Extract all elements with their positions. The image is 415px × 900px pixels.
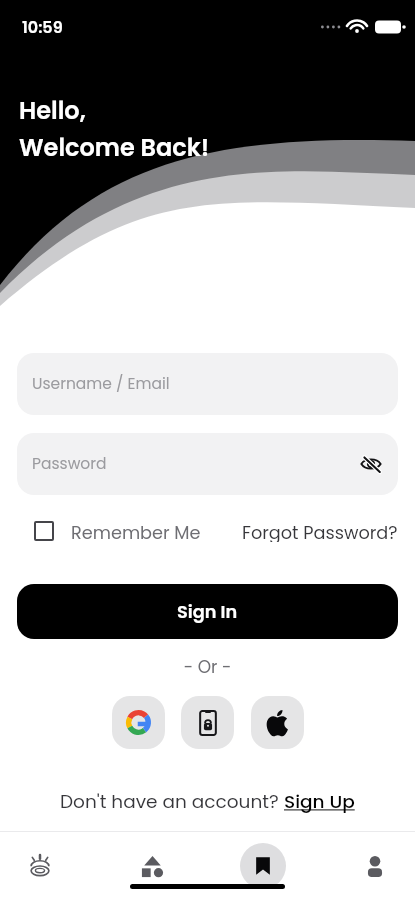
button[interactable]: Sign in with Apple — [251, 696, 304, 749]
button[interactable]: Sign In — [17, 584, 398, 639]
button[interactable]: Saved — [240, 843, 286, 889]
button[interactable]: Categories — [129, 843, 175, 889]
button[interactable]: Password — [17, 433, 398, 495]
button[interactable]: Show password — [354, 447, 388, 481]
button[interactable]: Sign Up — [284, 789, 355, 815]
button[interactable]: Sign in with Google — [112, 696, 165, 749]
button[interactable]: Sign in with phone — [181, 696, 234, 749]
staticText: Don't have an account? — [60, 789, 284, 815]
staticText: Hello, — [19, 94, 86, 128]
staticText: Username / Email — [32, 373, 170, 395]
staticText: - Or - — [17, 655, 398, 679]
staticText: Remember Me — [71, 520, 201, 542]
button[interactable]: Username / Email — [17, 353, 398, 415]
staticText: 10:59 — [22, 16, 63, 38]
staticText: Welcome Back! — [19, 131, 210, 165]
button[interactable]: Home — [17, 843, 63, 889]
staticText: Password — [32, 453, 107, 475]
staticText: Sign In — [177, 599, 238, 624]
button[interactable]: Profile — [352, 843, 398, 889]
button[interactable]: Forgot Password? — [242, 520, 398, 542]
button[interactable]: Remember Me — [17, 520, 201, 542]
